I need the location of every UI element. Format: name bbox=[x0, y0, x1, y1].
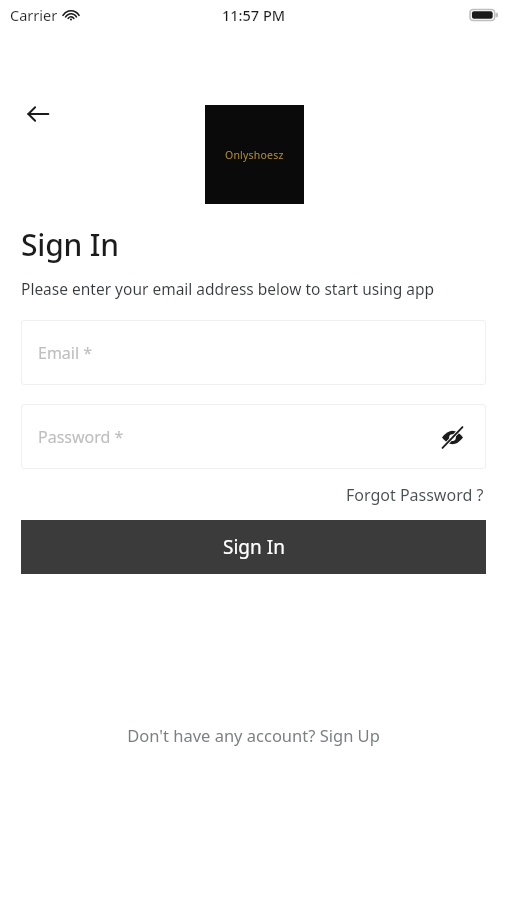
button[interactable]: Back bbox=[18, 94, 58, 134]
button[interactable]: Forgot Password ? bbox=[344, 481, 486, 509]
button[interactable]: Email * bbox=[21, 320, 486, 385]
staticText: Carrier bbox=[10, 5, 58, 25]
staticText: Onlyshoesz bbox=[225, 148, 284, 162]
staticText: Sign In bbox=[223, 534, 285, 560]
staticText: Please enter your email address below to… bbox=[21, 278, 435, 299]
staticText: Sign In bbox=[21, 224, 119, 265]
staticText: Password * bbox=[38, 426, 124, 448]
staticText: 11:57 PM bbox=[222, 5, 286, 25]
staticText: Email * bbox=[38, 342, 93, 364]
button[interactable]: Password * bbox=[21, 404, 486, 469]
button[interactable]: Sign In bbox=[21, 520, 486, 574]
staticText: Don't have any account? Sign Up bbox=[127, 724, 380, 746]
button[interactable]: Show password bbox=[437, 422, 467, 452]
button[interactable]: Don't have any account? Sign Up bbox=[119, 720, 388, 750]
staticText: Forgot Password ? bbox=[346, 484, 484, 506]
